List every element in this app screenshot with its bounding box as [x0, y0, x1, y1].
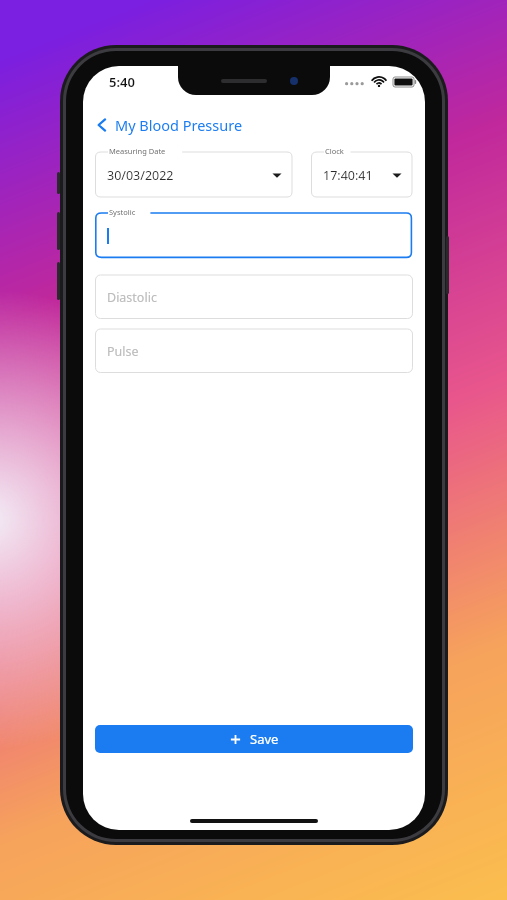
button[interactable]: Measuring Date — [95, 145, 293, 198]
staticText: My Blood Pressure — [115, 115, 243, 135]
staticText: Clock — [325, 146, 344, 156]
staticText: 30/03/2022 — [107, 167, 174, 184]
staticText: Systolic — [109, 207, 136, 217]
button[interactable]: Systolic — [95, 206, 413, 259]
button[interactable]: Pulse — [95, 322, 413, 373]
button[interactable]: Back — [89, 112, 115, 138]
staticText: Measuring Date — [109, 146, 166, 156]
staticText: Pulse — [107, 343, 139, 360]
button[interactable]: Diastolic — [95, 268, 413, 319]
staticText: Diastolic — [107, 289, 157, 306]
staticText: Save — [250, 730, 279, 748]
staticText: 5:40 — [109, 73, 135, 91]
staticText: 17:40:41 — [323, 167, 373, 184]
button[interactable]: Clock — [311, 145, 413, 198]
button[interactable]: Save — [95, 725, 413, 753]
